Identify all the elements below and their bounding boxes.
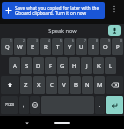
button[interactable]: H	[69, 57, 80, 74]
button[interactable]: R	[40, 38, 51, 55]
staticText: N	[85, 81, 90, 89]
button[interactable]: K	[93, 57, 104, 74]
staticText: T	[56, 43, 60, 51]
staticText: 3	[36, 39, 38, 43]
button[interactable]: Q	[1, 38, 13, 55]
button[interactable]: ,	[19, 96, 29, 114]
staticText: O	[103, 43, 108, 51]
button[interactable]: L	[105, 57, 116, 74]
staticText: 0	[120, 39, 122, 43]
staticText: 7	[84, 39, 86, 43]
staticText: E	[31, 43, 35, 51]
staticText: H	[72, 62, 77, 70]
staticText: A	[13, 62, 17, 70]
staticText: 4	[48, 39, 50, 43]
staticText: K	[97, 62, 101, 70]
staticText: M	[97, 81, 103, 89]
button[interactable]: M	[94, 76, 105, 94]
button[interactable]: S	[21, 57, 32, 74]
staticText: X	[37, 81, 41, 89]
button[interactable]: N	[82, 76, 93, 94]
staticText: 8	[96, 39, 98, 43]
button[interactable]: E	[27, 38, 39, 55]
button[interactable]: X	[33, 76, 45, 94]
staticText: V	[62, 81, 66, 89]
staticText: F	[49, 62, 53, 70]
button[interactable]: G	[57, 57, 68, 74]
staticText: W	[17, 43, 23, 51]
button[interactable]: Shift	[1, 76, 19, 94]
staticText: U	[79, 43, 84, 51]
staticText: Y	[68, 43, 72, 51]
staticText: Save what you copied for later with the …	[15, 5, 102, 17]
button[interactable]: Z	[20, 76, 32, 94]
button[interactable]: I	[88, 38, 99, 55]
staticText: 1	[10, 39, 12, 43]
button[interactable]: B	[70, 76, 81, 94]
staticText: ,	[23, 102, 25, 109]
staticText: J	[86, 62, 88, 70]
button[interactable]: J	[81, 57, 92, 74]
button[interactable]: More options	[108, 3, 120, 15]
button[interactable]: P	[112, 38, 123, 55]
staticText: Speak now	[48, 27, 77, 35]
button[interactable]: Y	[64, 38, 75, 55]
button[interactable]: Back	[22, 118, 32, 128]
button[interactable]: F	[45, 57, 56, 74]
staticText: 9	[108, 39, 110, 43]
button[interactable]: V	[58, 76, 69, 94]
staticText: I	[92, 43, 95, 51]
staticText: B	[74, 81, 78, 89]
staticText: Z	[24, 81, 28, 89]
button[interactable]: A	[9, 57, 20, 74]
button[interactable]: Save what you copied for later with the …	[2, 2, 105, 19]
staticText: P	[116, 43, 120, 51]
staticText: D	[36, 62, 41, 70]
staticText: 2	[23, 39, 25, 43]
button[interactable]: U	[76, 38, 87, 55]
staticText: L	[109, 62, 113, 70]
button[interactable]: Enter	[106, 96, 123, 114]
staticText: S	[25, 62, 29, 70]
button[interactable]: D	[33, 57, 44, 74]
button[interactable]: W	[14, 38, 26, 55]
staticText: .	[99, 102, 101, 109]
staticText: 5	[60, 39, 62, 43]
button[interactable]: Voice input	[108, 25, 121, 36]
staticText: ?123	[5, 102, 15, 108]
button[interactable]: Emoji	[30, 96, 40, 114]
button[interactable]: Home	[54, 122, 70, 124]
staticText: R	[44, 43, 48, 51]
staticText: G	[60, 62, 65, 70]
button[interactable]: T	[52, 38, 63, 55]
button[interactable]: C	[46, 76, 57, 94]
button[interactable]: ?123	[1, 96, 18, 114]
staticText: Q	[5, 43, 10, 51]
button[interactable]: .	[95, 96, 105, 114]
staticText: C	[50, 81, 54, 89]
button[interactable]: Backspace	[106, 76, 123, 94]
staticText: 6	[72, 39, 74, 43]
button[interactable]: O	[100, 38, 111, 55]
